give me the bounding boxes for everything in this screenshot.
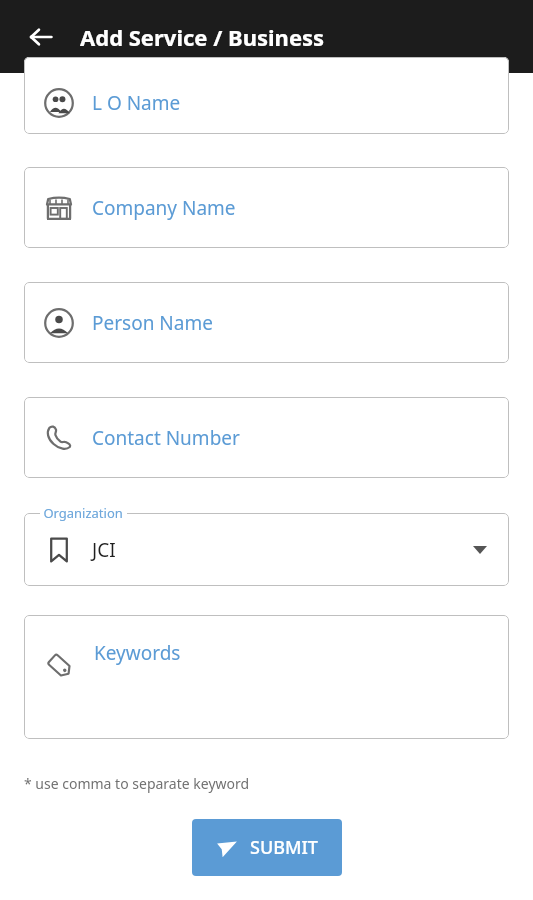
staticText: L O Name: [92, 90, 181, 116]
button[interactable]: Person Name: [24, 282, 509, 363]
button[interactable]: JCI: [24, 513, 509, 586]
staticText: Keywords: [94, 640, 181, 666]
button[interactable]: Company Name: [24, 167, 509, 248]
staticText: Organization: [40, 504, 127, 522]
staticText: Company Name: [92, 195, 236, 221]
staticText: Add Service / Business: [80, 22, 325, 52]
staticText: SUBMIT: [250, 835, 318, 860]
button[interactable]: Back: [16, 12, 66, 62]
staticText: Person Name: [92, 310, 213, 336]
staticText: JCI: [92, 537, 116, 563]
button[interactable]: Keywords: [24, 615, 509, 739]
staticText: * use comma to separate keyword: [24, 774, 250, 793]
button[interactable]: L O Name: [24, 57, 509, 134]
staticText: Contact Number: [92, 425, 240, 451]
button[interactable]: Contact Number: [24, 397, 509, 478]
button[interactable]: SUBMIT: [192, 819, 342, 876]
